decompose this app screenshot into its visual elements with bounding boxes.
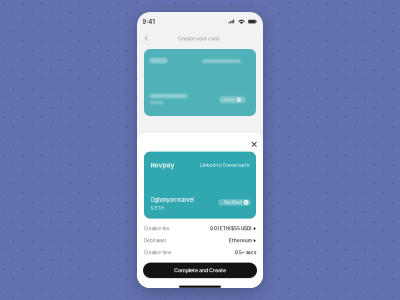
staticText: Create your card [178,35,219,42]
staticText: 9:41 [142,18,154,25]
button[interactable]: Complete and Create [143,263,257,278]
staticText: 0.01 ETH($55 USD) [210,226,252,231]
staticText: Complete and Create [174,267,226,274]
button[interactable]: Creation fee [144,223,256,235]
button[interactable]: Back [142,33,153,44]
staticText: 0.5~ secs [235,250,256,255]
staticText: 5 ETH [150,205,163,211]
staticText: Creation fee [144,226,170,231]
staticText: Verified [224,200,242,205]
staticText: Ethereum [229,238,252,243]
staticText: Revpay [150,161,174,169]
staticText: Linked to Owneruath [199,162,249,168]
button[interactable]: Creation time [144,247,256,259]
staticText: Creation time [144,250,172,255]
staticText: Oghonyon marvel [150,197,193,203]
button[interactable]: Close [249,139,259,150]
staticText: Debit asset [144,238,166,243]
button[interactable]: Debit asset [144,235,256,247]
